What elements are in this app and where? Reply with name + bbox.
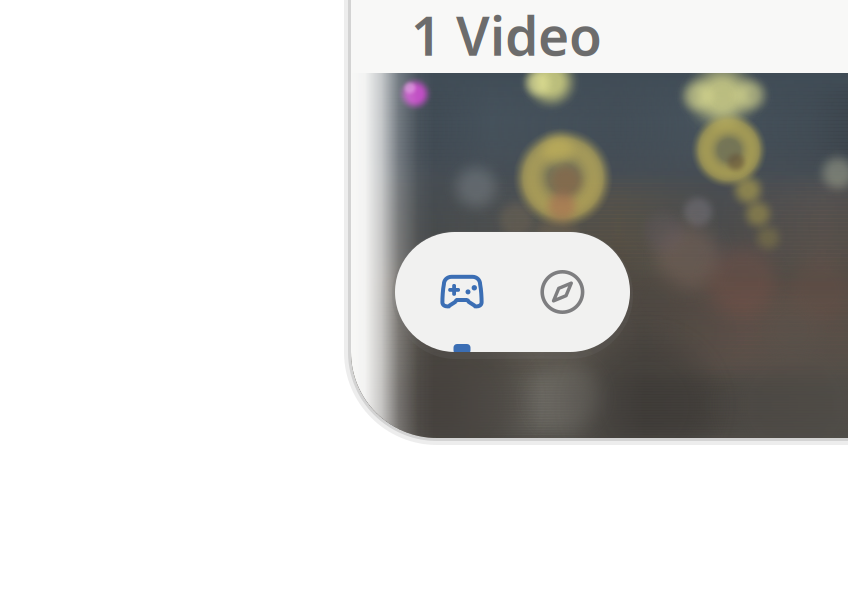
button[interactable]: Games bbox=[404, 232, 520, 352]
button[interactable]: Explore bbox=[504, 232, 620, 352]
staticText: 1 Video bbox=[411, 0, 602, 70]
